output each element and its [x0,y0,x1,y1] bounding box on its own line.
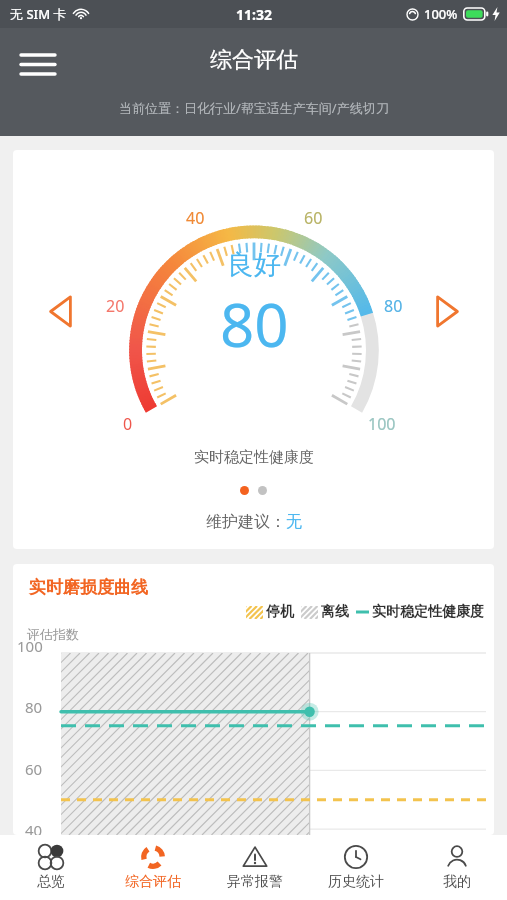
staticText: 100 [17,636,43,656]
staticText: 离线 [321,603,349,621]
staticText: 维护建议： [206,512,286,532]
button[interactable]: Next device [424,288,470,334]
staticText: 60 [304,207,323,229]
staticText: 综合评估 [125,873,181,891]
staticText: 评估指数 [27,626,79,642]
staticText: 停机 [266,603,294,621]
staticText: 实时磨损度曲线 [29,577,148,598]
staticText: 异常报警 [227,873,283,891]
staticText: 总览 [37,873,65,891]
staticText: 综合评估 [210,46,298,74]
staticText: 良好 [227,248,281,282]
staticText: 11:32 [236,5,272,24]
staticText: 历史统计 [328,873,384,891]
staticText: 40 [186,207,205,229]
staticText: 100 [368,413,396,435]
staticText: 0 [123,413,133,435]
staticText: 40 [25,820,43,835]
staticText: 无 SIM 卡 [10,5,67,23]
staticText: 无 [286,512,302,532]
staticText: 60 [25,759,43,779]
button[interactable]: Menu [12,38,64,90]
button[interactable]: 历史统计 [305,835,406,900]
button[interactable]: 异常报警 [204,835,305,900]
button[interactable]: Previous device [37,288,83,334]
staticText: 我的 [443,873,471,891]
staticText: 80 [25,697,43,717]
button[interactable]: 综合评估 [102,835,204,900]
button[interactable]: 总览 [0,835,102,900]
staticText: 实时稳定性健康度 [194,448,314,467]
staticText: 20 [106,295,125,317]
staticText: 100% [424,5,458,23]
staticText: 实时稳定性健康度 [372,603,484,621]
button[interactable]: 我的 [406,835,507,900]
staticText: 80 [220,283,289,365]
staticText: 当前位置：日化行业/帮宝适生产车间/产线切刀 [119,99,389,117]
staticText: 80 [384,295,403,317]
